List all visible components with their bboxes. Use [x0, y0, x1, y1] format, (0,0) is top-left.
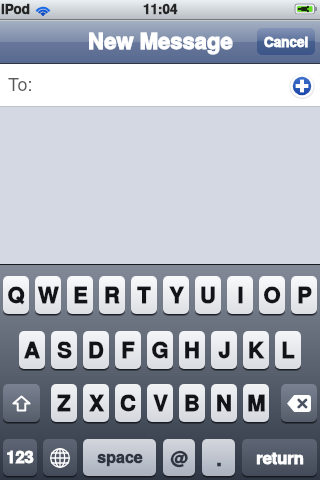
button[interactable]: V — [147, 384, 173, 422]
staticText: return — [256, 445, 304, 469]
staticText: K — [248, 333, 264, 365]
staticText: To: — [8, 70, 33, 96]
button[interactable]: X — [83, 384, 109, 422]
button[interactable]: F — [115, 331, 141, 369]
staticText: Cancel — [264, 32, 309, 51]
button[interactable]: R — [99, 276, 125, 314]
staticText: M — [247, 386, 266, 418]
staticText: G — [151, 333, 169, 365]
button[interactable]: . — [202, 439, 235, 476]
button[interactable]: U — [195, 276, 221, 314]
button[interactable]: T — [131, 276, 157, 314]
button[interactable]: Shift — [3, 384, 40, 422]
staticText: N — [216, 386, 232, 418]
button[interactable]: Q — [3, 276, 29, 314]
button[interactable]: S — [51, 331, 77, 369]
button[interactable]: @ — [163, 439, 195, 476]
staticText: P — [297, 278, 312, 310]
staticText: 11:04 — [143, 0, 178, 18]
staticText: R — [104, 278, 120, 310]
staticText: B — [184, 386, 200, 418]
button[interactable]: space — [83, 439, 156, 476]
staticText: D — [88, 333, 104, 365]
button[interactable]: I — [227, 276, 253, 314]
button[interactable]: To: — [0, 64, 320, 107]
button[interactable]: Z — [51, 384, 77, 422]
button[interactable]: C — [115, 384, 141, 422]
button[interactable]: G — [147, 331, 173, 369]
staticText: J — [218, 333, 231, 365]
staticText: F — [121, 333, 135, 365]
staticText: Y — [169, 278, 184, 310]
button[interactable]: 123 — [3, 439, 37, 476]
staticText: O — [263, 278, 281, 310]
button[interactable]: Y — [163, 276, 189, 314]
button[interactable]: H — [179, 331, 205, 369]
staticText: space — [97, 445, 143, 468]
button[interactable]: Change keyboard — [43, 439, 77, 476]
button[interactable]: A — [19, 331, 45, 369]
staticText: I — [237, 278, 244, 310]
staticText: W — [38, 278, 59, 310]
button[interactable]: M — [243, 384, 269, 422]
staticText: iPod — [1, 0, 31, 18]
button[interactable]: N — [211, 384, 237, 422]
staticText: E — [73, 278, 88, 310]
staticText: Z — [57, 386, 71, 418]
button[interactable]: B — [179, 384, 205, 422]
button[interactable]: L — [275, 331, 301, 369]
button[interactable]: Backspace — [281, 384, 317, 422]
button[interactable]: P — [291, 276, 317, 314]
staticText: @ — [170, 444, 188, 470]
staticText: . — [216, 443, 222, 472]
staticText: 123 — [6, 444, 34, 468]
staticText: Q — [7, 278, 25, 310]
button[interactable]: return — [242, 439, 317, 476]
button[interactable]: D — [83, 331, 109, 369]
staticText: H — [184, 333, 200, 365]
staticText: T — [137, 278, 151, 310]
staticText: L — [281, 333, 295, 365]
staticText: New Message — [88, 24, 233, 56]
button[interactable]: W — [35, 276, 61, 314]
staticText: A — [24, 333, 40, 365]
button[interactable]: Add contact — [289, 73, 315, 99]
staticText: V — [153, 386, 168, 418]
button[interactable]: Cancel — [257, 28, 315, 55]
button[interactable]: J — [211, 331, 237, 369]
staticText: X — [89, 386, 104, 418]
staticText: S — [57, 333, 72, 365]
staticText: C — [120, 386, 136, 418]
staticText: U — [200, 278, 216, 310]
button[interactable]: K — [243, 331, 269, 369]
button[interactable]: E — [67, 276, 93, 314]
button[interactable]: O — [259, 276, 285, 314]
